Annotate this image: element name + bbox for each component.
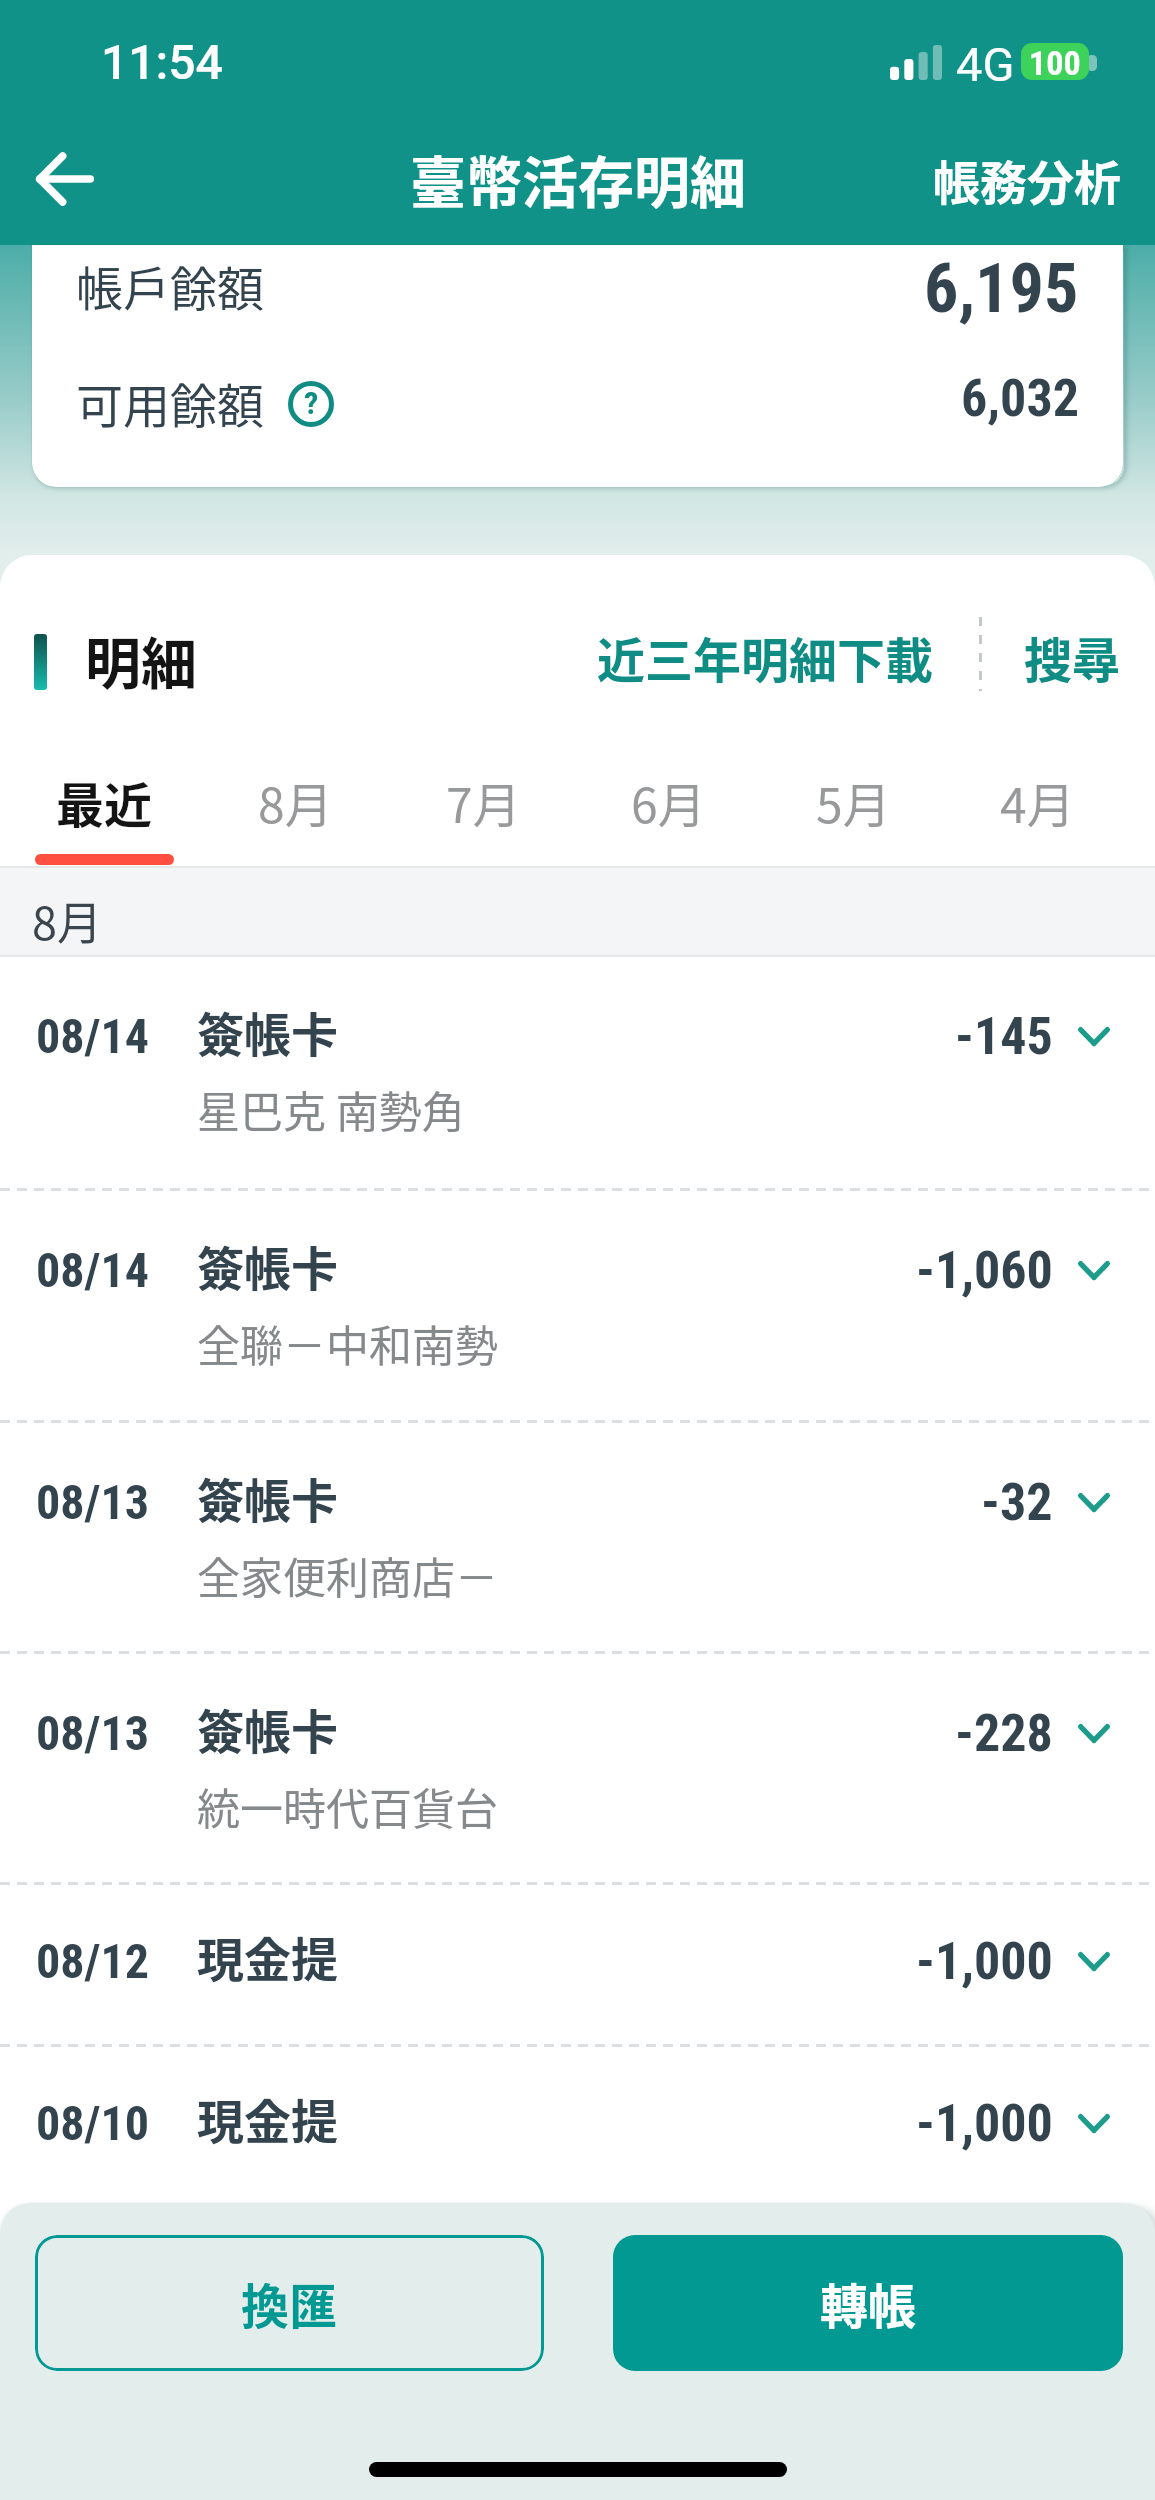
staticText: 可用餘額 xyxy=(76,368,264,436)
staticText: 6月 xyxy=(631,767,706,837)
staticText: 8月 xyxy=(32,888,102,953)
staticText: 5月 xyxy=(816,767,891,837)
staticText: -228 xyxy=(955,1703,1053,1764)
staticText: -1,060 xyxy=(916,1240,1053,1301)
staticText: 08/13 xyxy=(36,1705,150,1761)
staticText: 換匯 xyxy=(241,2268,338,2338)
staticText: 全家便利商店－ xyxy=(197,1544,498,1606)
staticText: 星巴克 南勢角 xyxy=(197,1078,465,1140)
staticText: 現金提 xyxy=(197,1922,338,1990)
staticText: 現金提 xyxy=(197,2084,338,2152)
staticText: -1,000 xyxy=(916,1931,1053,1992)
button[interactable]: 08/10 xyxy=(0,2047,1155,2207)
button[interactable]: 6月 xyxy=(576,751,760,866)
button[interactable]: 08/14 xyxy=(0,1191,1155,1420)
button[interactable]: 08/13 xyxy=(0,1423,1155,1651)
button[interactable]: 搜尋 xyxy=(1024,622,1121,692)
staticText: 簽帳卡 xyxy=(197,1231,338,1299)
staticText: 6,195 xyxy=(924,249,1079,329)
staticText: ? xyxy=(304,384,319,422)
staticText: 臺幣活存明細 xyxy=(410,138,746,219)
button[interactable]: 最近 xyxy=(12,751,196,866)
staticText: 7月 xyxy=(446,767,521,837)
staticText: 轉帳 xyxy=(820,2268,917,2338)
staticText: 100 xyxy=(1029,43,1081,80)
button[interactable]: 08/14 xyxy=(0,957,1155,1188)
button[interactable]: Back xyxy=(18,132,112,226)
button[interactable]: 7月 xyxy=(391,751,575,866)
staticText: -1,000 xyxy=(916,2093,1053,2154)
staticText: 搜尋 xyxy=(1024,622,1121,692)
staticText: 簽帳卡 xyxy=(197,1463,338,1531)
staticText: 08/13 xyxy=(36,1474,150,1530)
staticText: 08/12 xyxy=(36,1933,150,1989)
staticText: 全聯－中和南勢 xyxy=(197,1312,498,1374)
staticText: 4月 xyxy=(1000,767,1075,837)
staticText: 帳務分析 xyxy=(933,145,1121,213)
staticText: 4G xyxy=(956,37,1015,92)
staticText: 最近 xyxy=(56,767,153,837)
button[interactable]: 5月 xyxy=(761,751,945,866)
button[interactable]: 08/13 xyxy=(0,1654,1155,1882)
staticText: 明細 xyxy=(85,619,197,700)
staticText: 近三年明細下載 xyxy=(597,622,934,692)
staticText: 帳戶餘額 xyxy=(76,251,264,319)
button[interactable]: 8月 xyxy=(203,751,387,866)
button[interactable]: Help xyxy=(287,380,335,428)
button[interactable]: 近三年明細下載 xyxy=(597,622,934,692)
staticText: 08/14 xyxy=(36,1242,150,1298)
staticText: 08/10 xyxy=(36,2095,150,2151)
staticText: 11:54 xyxy=(101,34,223,90)
staticText: 統一時代百貨台 xyxy=(197,1775,498,1837)
staticText: 簽帳卡 xyxy=(197,997,338,1065)
staticText: 08/14 xyxy=(36,1008,150,1064)
button[interactable]: 換匯 xyxy=(35,2235,544,2371)
staticText: 6,032 xyxy=(961,368,1079,429)
staticText: 簽帳卡 xyxy=(197,1694,338,1762)
button[interactable]: 轉帳 xyxy=(613,2235,1123,2371)
button[interactable]: 4月 xyxy=(945,751,1129,866)
button[interactable]: 明細 xyxy=(85,619,197,700)
staticText: -145 xyxy=(955,1006,1053,1067)
staticText: 8月 xyxy=(258,767,333,837)
button[interactable]: 帳務分析 xyxy=(933,145,1121,213)
button[interactable]: 08/12 xyxy=(0,1885,1155,2044)
staticText: -32 xyxy=(981,1472,1053,1533)
